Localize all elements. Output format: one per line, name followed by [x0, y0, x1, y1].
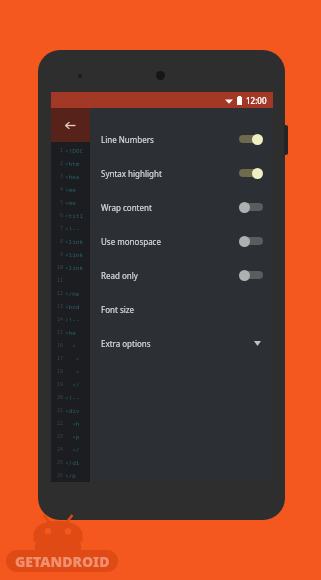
staticText: <titl — [65, 212, 84, 220]
staticText: <htm — [65, 160, 80, 168]
staticText: <link — [65, 251, 84, 259]
staticText: < — [65, 342, 76, 350]
staticText: Use monospace — [101, 236, 161, 247]
staticText: </he — [65, 290, 80, 298]
button[interactable]: Use monospace — [90, 224, 273, 258]
button[interactable]: Read only — [90, 258, 273, 292]
button[interactable]: Font size — [90, 292, 273, 326]
staticText: 10 — [51, 264, 63, 271]
staticText: <!-- — [65, 316, 84, 324]
staticText: <bod — [65, 303, 80, 311]
staticText: Extra options — [101, 338, 151, 349]
staticText: 19 — [51, 381, 63, 388]
staticText: <div — [65, 407, 80, 415]
staticText: < — [65, 368, 80, 376]
button[interactable]: Syntax highlight — [90, 156, 273, 190]
staticText: 3 — [51, 173, 63, 180]
staticText: GETANDROID — [15, 552, 110, 571]
staticText: 26 — [51, 472, 63, 479]
staticText: Wrap content — [101, 202, 152, 213]
staticText: 12:00 — [246, 95, 267, 106]
staticText: Read only — [101, 270, 138, 281]
staticText: 21 — [51, 407, 63, 414]
staticText: 4 — [51, 186, 63, 193]
staticText: Line Numbers — [101, 134, 154, 145]
staticText: 5 — [51, 199, 63, 206]
staticText: < — [65, 355, 80, 363]
staticText: 24 — [51, 446, 63, 453]
staticText: </di — [65, 459, 80, 467]
staticText: </ — [65, 381, 80, 389]
staticText: <!DOC — [65, 147, 84, 155]
button[interactable]: Line Numbers — [90, 122, 273, 156]
staticText: 17 — [51, 355, 63, 362]
staticText: <me — [65, 199, 76, 207]
staticText: 2 — [51, 160, 63, 167]
button[interactable]: Extra options — [90, 326, 273, 360]
staticText: 25 — [51, 459, 63, 466]
staticText: <!-- — [65, 394, 84, 402]
staticText: <hea — [65, 173, 80, 181]
button[interactable]: Wrap content — [90, 190, 273, 224]
staticText: 14 — [51, 316, 63, 323]
staticText: 16 — [51, 342, 63, 349]
staticText: 6 — [51, 212, 63, 219]
staticText: 8 — [51, 238, 63, 245]
staticText: 12 — [51, 290, 63, 297]
staticText: <h — [65, 420, 80, 428]
staticText: 7 — [51, 225, 63, 232]
staticText: <me — [65, 186, 76, 194]
staticText: Syntax highlight — [101, 168, 162, 179]
staticText: 18 — [51, 368, 63, 375]
staticText: 15 — [51, 329, 63, 336]
staticText: 22 — [51, 420, 63, 427]
button[interactable]: Back — [51, 108, 90, 142]
staticText: 1 — [51, 147, 63, 154]
staticText: <he — [65, 329, 76, 337]
staticText: </b — [65, 472, 76, 480]
staticText: 20 — [51, 394, 63, 401]
staticText: 11 — [51, 277, 63, 284]
staticText: 23 — [51, 433, 63, 440]
staticText: <link — [65, 238, 84, 246]
staticText: <p — [65, 433, 80, 441]
staticText: <!-- — [65, 225, 84, 233]
staticText: 13 — [51, 303, 63, 310]
staticText: 9 — [51, 251, 63, 258]
staticText: </ — [65, 446, 80, 454]
staticText: Font size — [101, 304, 135, 315]
staticText: <link — [65, 264, 84, 272]
